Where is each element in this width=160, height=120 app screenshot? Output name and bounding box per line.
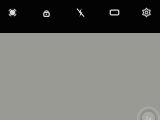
button[interactable]: Exposure lock: [37, 3, 55, 21]
button[interactable]: Brightness: [3, 3, 21, 21]
button[interactable]: Aspect ratio: [105, 3, 123, 21]
button[interactable]: Settings: [137, 3, 155, 21]
button[interactable]: Zoom: [133, 102, 160, 120]
button[interactable]: Flash off: [71, 3, 89, 21]
